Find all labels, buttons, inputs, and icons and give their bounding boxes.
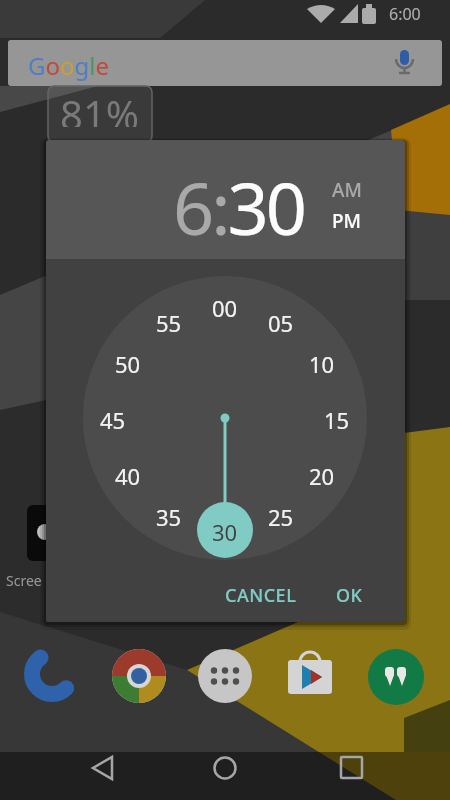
staticText: 6:00 [389,3,421,25]
staticText: CANCEL [225,583,297,608]
staticText: OK [336,583,363,608]
button[interactable]: Google [8,40,442,86]
button[interactable] [195,752,255,800]
staticText: 20 [309,461,335,487]
button[interactable]: 55 [147,308,191,334]
staticText: 05 [268,308,294,334]
button[interactable]: 40 [106,461,150,487]
staticText: 15 [324,405,350,431]
staticText: 40 [115,461,141,487]
staticText: AM [332,177,362,203]
button[interactable]: 20 [300,461,344,487]
staticText: 35 [156,502,182,528]
staticText: 55 [156,308,182,334]
button[interactable]: 25 [259,502,303,528]
staticText: 00 [212,293,238,319]
staticText: 10 [309,349,335,375]
staticText: 25 [268,502,294,528]
button[interactable] [111,648,167,704]
button[interactable]: 45 [91,405,135,431]
button[interactable]: 10 [300,349,344,375]
button[interactable]: 35 [147,502,191,528]
button[interactable]: 50 [106,349,150,375]
button[interactable] [197,648,253,704]
button[interactable] [392,46,420,80]
staticText: 6:30 [173,158,304,256]
button[interactable] [368,648,424,704]
button[interactable] [24,648,80,704]
staticText: 81% [60,87,139,127]
staticText: Google [28,49,109,82]
button[interactable]: CANCEL [201,575,321,615]
staticText: 30 [212,517,238,543]
button[interactable]: 00 [203,293,247,319]
button[interactable] [315,752,375,800]
staticText: Scree [6,571,42,590]
staticText: 50 [115,349,141,375]
button[interactable]: 30 [203,517,247,543]
button[interactable] [282,648,338,704]
button[interactable]: 05 [259,308,303,334]
button[interactable]: OK [315,575,383,615]
staticText: PM [332,208,362,234]
button[interactable]: PM [323,203,371,239]
button[interactable]: AM [323,172,371,208]
staticText: 45 [100,405,126,431]
button[interactable]: 15 [315,405,359,431]
button[interactable] [75,752,135,800]
